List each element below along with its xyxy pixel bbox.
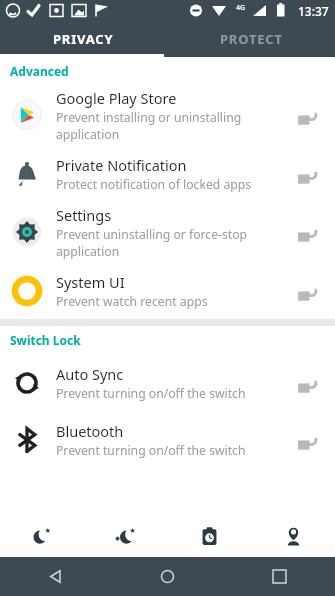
staticText: Advanced bbox=[10, 63, 69, 79]
button[interactable]: Auto Sync bbox=[0, 354, 335, 411]
button[interactable]: Location bbox=[251, 516, 335, 557]
staticText: Settings bbox=[56, 205, 112, 225]
staticText: Prevent turning on/off the switch bbox=[56, 385, 246, 402]
staticText: Prevent watch recent apps bbox=[56, 293, 208, 310]
button[interactable]: Add night mode bbox=[83, 516, 167, 557]
button[interactable]: Home bbox=[111, 557, 223, 596]
button[interactable]: PROTECT bbox=[167, 21, 335, 57]
button[interactable]: Private Notification bbox=[0, 145, 335, 202]
staticText: Switch Lock bbox=[10, 332, 81, 348]
staticText: Private Notification bbox=[56, 155, 187, 175]
button[interactable]: Back bbox=[0, 557, 111, 596]
staticText: Prevent uninstalling or force-stop bbox=[56, 226, 248, 243]
staticText: Prevent installing or uninstalling bbox=[56, 109, 242, 126]
button[interactable]: Bluetooth lock toggle bbox=[291, 423, 325, 457]
staticText: PRIVACY bbox=[53, 30, 114, 48]
button[interactable]: System UI bbox=[0, 262, 335, 319]
staticText: Protect notification of locked apps bbox=[56, 176, 252, 193]
staticText: application bbox=[56, 126, 120, 143]
button[interactable]: Night mode bbox=[0, 516, 83, 557]
button[interactable]: Google Play Store lock toggle bbox=[291, 98, 325, 132]
staticText: Prevent turning on/off the switch bbox=[56, 442, 246, 459]
button[interactable]: Bluetooth bbox=[0, 411, 335, 468]
staticText: Bluetooth bbox=[56, 421, 124, 441]
staticText: application bbox=[56, 243, 120, 260]
staticText: Auto Sync bbox=[56, 364, 124, 384]
staticText: 13:37 bbox=[298, 3, 329, 19]
button[interactable]: Schedule bbox=[167, 516, 251, 557]
button[interactable]: Google Play Store bbox=[0, 85, 335, 145]
button[interactable]: Private Notification lock toggle bbox=[291, 157, 325, 191]
button[interactable]: Settings bbox=[0, 202, 335, 262]
staticText: PROTECT bbox=[220, 30, 283, 48]
button[interactable]: System UI lock toggle bbox=[291, 274, 325, 308]
button[interactable]: PRIVACY bbox=[0, 21, 167, 57]
button[interactable]: Auto Sync lock toggle bbox=[291, 366, 325, 400]
button[interactable]: Recent apps bbox=[223, 557, 335, 596]
staticText: 4G bbox=[236, 3, 246, 13]
staticText: System UI bbox=[56, 272, 125, 292]
staticText: Google Play Store bbox=[56, 88, 177, 108]
button[interactable]: Settings lock toggle bbox=[291, 215, 325, 249]
